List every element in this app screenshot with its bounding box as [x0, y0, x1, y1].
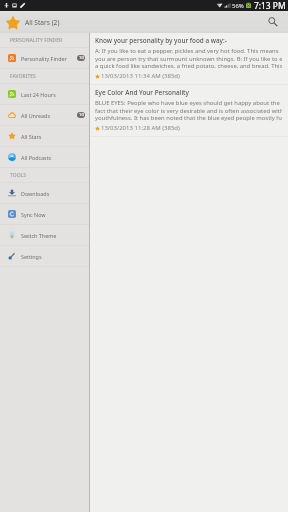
button[interactable]: All Unreads	[0, 105, 89, 125]
staticText: FAVORITES	[10, 73, 36, 80]
staticText: All Unreads	[21, 112, 50, 119]
staticText: Personality Finder	[21, 55, 67, 62]
staticText: 13/03/2013 11:34 AM (385d)	[101, 72, 180, 80]
staticText: Sync Now	[21, 211, 46, 218]
staticText: BLUE EYES: People who have blue eyes sho…	[95, 99, 282, 121]
staticText: Last 24 Hours	[21, 91, 56, 98]
staticText: All Podcasts	[21, 154, 52, 161]
button[interactable]: Sync Now	[0, 204, 89, 224]
button[interactable]: Settings	[0, 246, 89, 266]
staticText: 56%	[232, 2, 244, 10]
staticText: All Stars (2)	[25, 18, 60, 27]
button[interactable]: Search	[265, 14, 281, 30]
staticText: Eye Color And Your Personality	[95, 88, 189, 97]
staticText: Settings	[21, 253, 42, 260]
staticText: 10	[79, 55, 84, 61]
staticText: Know your personality by your food a way…	[95, 36, 227, 45]
button[interactable]: Open navigation drawer	[3, 13, 22, 32]
staticText: A: If you like to eat a pepper, pickles …	[95, 47, 282, 69]
button[interactable]: All Stars	[0, 126, 89, 146]
staticText: Downloads	[21, 190, 50, 197]
button[interactable]: Downloads	[0, 183, 89, 203]
button[interactable]: Know your personality by your food a way…	[90, 33, 288, 85]
button[interactable]: All Podcasts	[0, 147, 89, 167]
staticText: TOOLS	[10, 172, 26, 179]
button[interactable]: Personality Finder	[0, 48, 89, 68]
button[interactable]: Eye Color And Your Personality	[90, 85, 288, 137]
staticText: 7:13 PM	[254, 0, 286, 11]
staticText: 13/03/2013 11:28 AM (385d)	[101, 124, 180, 132]
button[interactable]: Switch Theme	[0, 225, 89, 245]
staticText: 10	[79, 112, 84, 118]
button[interactable]: Last 24 Hours	[0, 84, 89, 104]
staticText: All Stars	[21, 133, 42, 140]
staticText: Switch Theme	[21, 232, 57, 239]
staticText: PERSONALITY FINDER	[10, 37, 63, 44]
